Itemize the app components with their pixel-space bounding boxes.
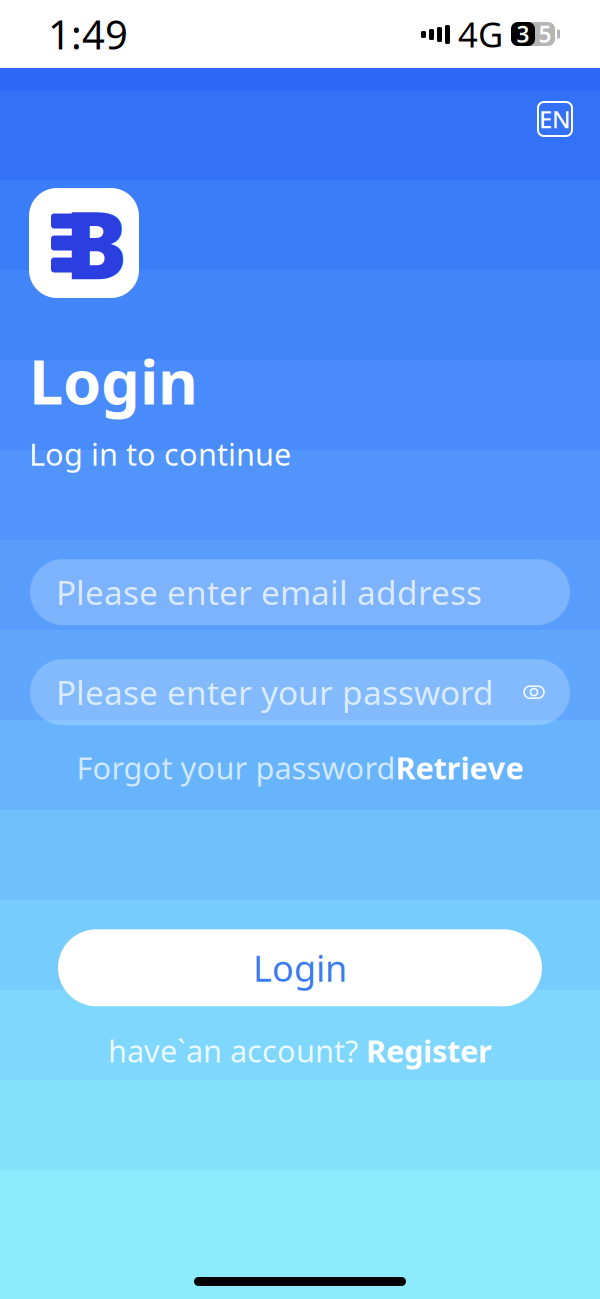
- staticText: B: [64, 181, 127, 305]
- staticText: Forgot your password: [76, 747, 395, 788]
- staticText: Please enter your password: [56, 670, 494, 714]
- staticText: Register: [366, 1030, 492, 1071]
- staticText: 1:49: [48, 7, 128, 60]
- staticText: Login: [253, 944, 347, 992]
- button[interactable]: have`an account?: [98, 1024, 502, 1077]
- staticText: EN: [539, 103, 571, 135]
- button[interactable]: Login: [58, 929, 542, 1006]
- staticText: 4G: [458, 11, 503, 57]
- button[interactable]: Forgot your password: [66, 741, 533, 794]
- staticText: Login: [29, 340, 198, 421]
- staticText: 3: [516, 19, 529, 49]
- staticText: Log in to continue: [29, 433, 291, 474]
- staticText: 5: [538, 19, 551, 49]
- button[interactable]: Language: English: [538, 102, 572, 136]
- button[interactable]: Show password: [512, 670, 556, 714]
- staticText: Please enter email address: [56, 570, 482, 614]
- staticText: Retrieve: [395, 747, 523, 788]
- staticText: have`an account?: [108, 1030, 366, 1071]
